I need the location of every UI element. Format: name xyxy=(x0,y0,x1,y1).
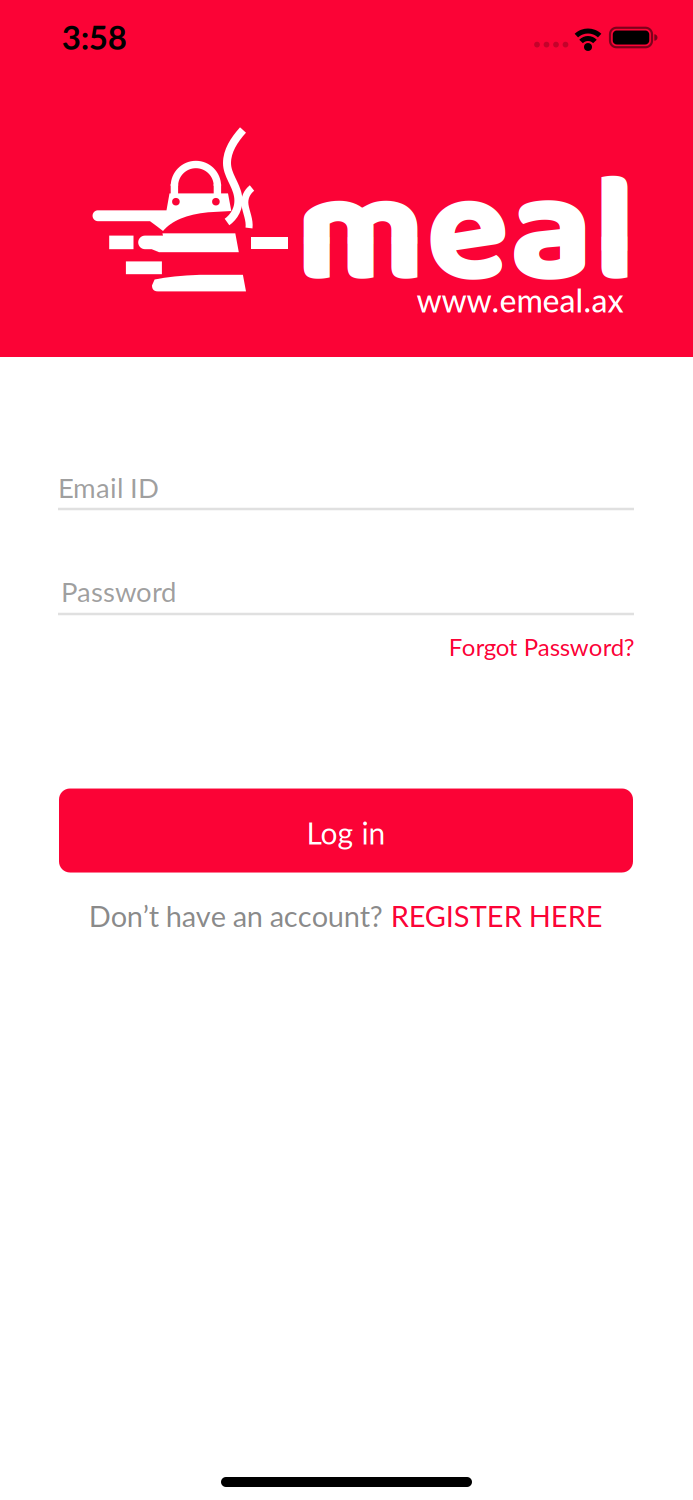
button[interactable]: Log in xyxy=(59,788,633,872)
staticText: Log in xyxy=(306,815,385,851)
staticText: REGISTER HERE xyxy=(391,898,603,933)
button[interactable]: Forgot Password? xyxy=(449,632,635,661)
staticText: Password xyxy=(61,575,176,608)
button[interactable]: Email ID xyxy=(58,460,635,511)
staticText: 3:58 xyxy=(62,17,127,57)
staticText: www.emeal.ax xyxy=(416,281,623,319)
button[interactable]: Don’t have an account? xyxy=(89,898,603,933)
staticText: Don’t have an account? xyxy=(89,898,383,933)
staticText: Email ID xyxy=(58,471,159,504)
staticText: Forgot Password? xyxy=(449,632,635,661)
staticText: meal xyxy=(296,112,637,358)
button[interactable]: Password xyxy=(58,564,635,616)
